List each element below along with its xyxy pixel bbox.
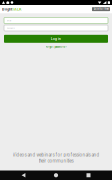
staticText: Forgot password? xyxy=(45,45,66,48)
staticText: Email xyxy=(6,19,10,22)
staticText: Password xyxy=(6,27,14,29)
staticText: their communities xyxy=(38,158,73,163)
button[interactable]: Join for free xyxy=(92,7,110,11)
button[interactable]: Log in xyxy=(4,35,108,43)
staticText: Join for free xyxy=(93,8,108,11)
button[interactable]: Forgot password? xyxy=(4,44,108,49)
staticText: Bright xyxy=(2,7,12,11)
staticText: TALK xyxy=(12,7,22,11)
staticText: Log in xyxy=(51,37,61,41)
staticText: Videos and webinars for professionals an… xyxy=(12,152,99,158)
button[interactable]: Recent apps xyxy=(79,170,97,180)
button[interactable]: Home xyxy=(47,170,65,180)
button[interactable]: Back xyxy=(14,170,32,180)
